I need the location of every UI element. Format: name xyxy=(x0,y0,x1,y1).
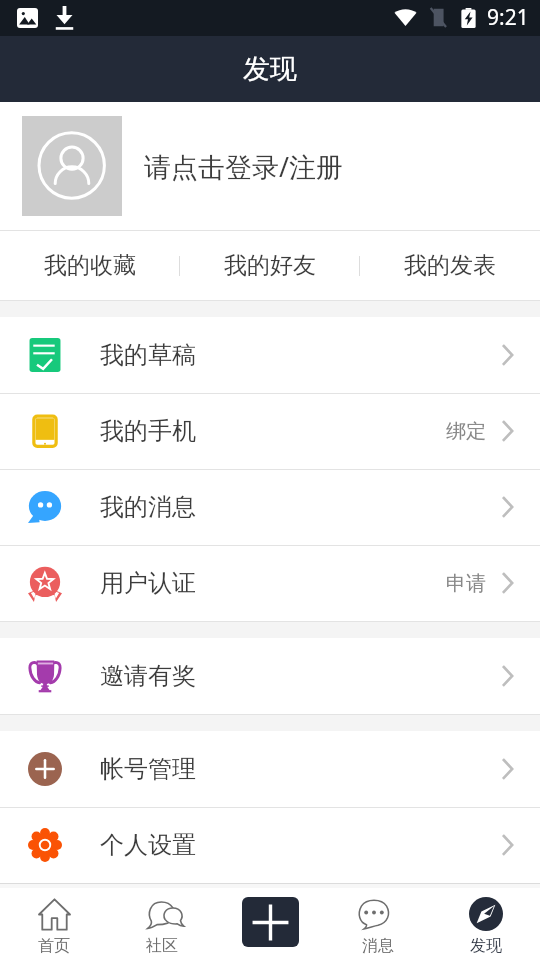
button[interactable]: 消息 xyxy=(324,888,432,960)
staticText: 社区 xyxy=(146,936,178,956)
button[interactable]: Create new post xyxy=(242,897,299,947)
button[interactable]: 个人设置 xyxy=(0,807,540,883)
button[interactable]: 发现 xyxy=(432,888,540,960)
staticText: 邀请有奖 xyxy=(100,661,196,691)
staticText: 我的发表 xyxy=(404,251,496,280)
staticText: 个人设置 xyxy=(100,830,196,860)
button[interactable]: 我的好友 xyxy=(180,231,360,300)
staticText: 发现 xyxy=(470,936,502,956)
staticText: 帐号管理 xyxy=(100,754,196,784)
staticText: 我的好友 xyxy=(224,251,316,280)
staticText: 发现 xyxy=(243,52,297,86)
staticText: 首页 xyxy=(38,936,70,956)
staticText: 消息 xyxy=(362,936,394,956)
staticText: 我的草稿 xyxy=(100,340,196,370)
button[interactable]: 我的收藏 xyxy=(0,231,180,300)
button[interactable]: 社区 xyxy=(108,888,216,960)
staticText: 我的手机 xyxy=(100,416,196,446)
staticText: 请点击登录/注册 xyxy=(144,148,344,185)
button[interactable]: 邀请有奖 xyxy=(0,638,540,714)
staticText: 用户认证 xyxy=(100,568,196,598)
button[interactable]: 我的草稿 xyxy=(0,317,540,393)
button[interactable]: 帐号管理 xyxy=(0,731,540,807)
button[interactable]: 请点击登录/注册 xyxy=(0,102,540,230)
staticText: 我的收藏 xyxy=(44,251,136,280)
button[interactable]: 我的手机 xyxy=(0,393,540,469)
button[interactable]: 用户认证 xyxy=(0,545,540,621)
staticText: 9:21 xyxy=(487,3,529,32)
button[interactable]: 我的发表 xyxy=(360,231,540,300)
button[interactable]: 首页 xyxy=(0,888,108,960)
staticText: 我的消息 xyxy=(100,492,196,522)
button[interactable]: 我的消息 xyxy=(0,469,540,545)
staticText: 绑定 xyxy=(446,419,486,444)
staticText: 申请 xyxy=(446,571,486,596)
